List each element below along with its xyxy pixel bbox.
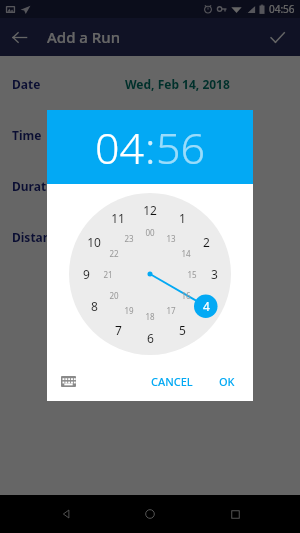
staticText: 5 xyxy=(179,322,186,338)
button[interactable]: Save xyxy=(258,18,296,56)
staticText: Date xyxy=(12,76,41,92)
staticText: 04 xyxy=(95,118,145,177)
staticText: OK xyxy=(219,374,235,389)
button[interactable]: Switch to keyboard input xyxy=(55,368,81,394)
staticText: CANCEL xyxy=(151,374,193,389)
staticText: 7 xyxy=(115,322,122,338)
staticText: 3 xyxy=(211,266,218,282)
button[interactable]: Distance xyxy=(0,225,300,249)
staticText: Time xyxy=(12,127,42,143)
staticText: 56 xyxy=(156,118,206,177)
staticText: 13 xyxy=(166,233,176,244)
staticText: 4 xyxy=(203,298,210,314)
button[interactable]: Recents xyxy=(216,495,254,533)
staticText: 5.0 km xyxy=(190,229,230,245)
staticText: 2 xyxy=(203,234,210,250)
staticText: Duration xyxy=(12,178,65,194)
staticText: Wed, Feb 14, 2018 xyxy=(125,76,230,92)
staticText: 8 xyxy=(91,298,98,314)
staticText: 10 xyxy=(87,234,101,250)
staticText: 16 xyxy=(181,290,191,301)
staticText: 12 xyxy=(143,202,157,218)
staticText: 11 xyxy=(111,210,125,226)
staticText: 15 xyxy=(187,269,197,280)
button[interactable]: OK xyxy=(211,368,243,395)
button[interactable]: CANCEL xyxy=(143,368,201,395)
staticText: 1 xyxy=(179,210,186,226)
staticText: 19 xyxy=(124,305,134,316)
staticText: 14 xyxy=(181,248,191,259)
staticText: 04:56 xyxy=(269,2,295,16)
staticText: 6 xyxy=(147,330,154,346)
button[interactable]: Home xyxy=(131,495,169,533)
staticText: 00 xyxy=(145,227,155,238)
staticText: 9 xyxy=(83,266,90,282)
staticText: 23 xyxy=(124,233,134,244)
staticText: 00:30:00 xyxy=(182,178,230,194)
staticText: 18 xyxy=(145,311,155,322)
button[interactable]: 56 xyxy=(156,118,206,177)
staticText: 22 xyxy=(109,248,119,259)
button[interactable]: Date xyxy=(0,72,300,96)
staticText: 17 xyxy=(166,305,176,316)
button[interactable]: Time xyxy=(0,123,300,147)
staticText: 4:56 AM xyxy=(183,127,230,143)
button[interactable]: Duration xyxy=(0,174,300,198)
staticText: 21 xyxy=(103,269,113,280)
button[interactable]: Back xyxy=(47,495,85,533)
staticText: 20 xyxy=(109,290,119,301)
staticText: Distance xyxy=(12,229,64,245)
staticText: : xyxy=(145,118,156,177)
button[interactable]: Back xyxy=(0,18,38,56)
button[interactable]: 04 xyxy=(95,118,145,177)
staticText: Add a Run xyxy=(47,27,121,47)
